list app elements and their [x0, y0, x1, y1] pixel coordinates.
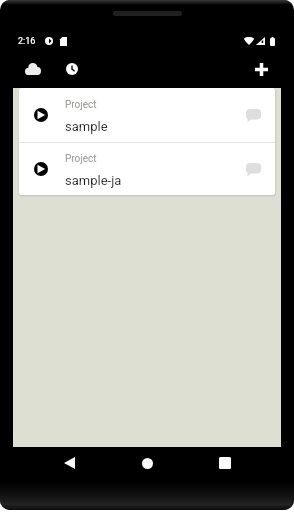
- button[interactable]: Back: [30, 447, 108, 479]
- staticText: Project: [65, 99, 97, 111]
- button[interactable]: Comments: [242, 104, 264, 126]
- button[interactable]: Project: [19, 143, 275, 195]
- staticText: sample-ja: [65, 173, 122, 188]
- staticText: sample: [65, 119, 108, 134]
- staticText: 2:16: [18, 36, 36, 47]
- staticText: Project: [65, 153, 97, 165]
- button[interactable]: Add: [249, 57, 273, 81]
- button[interactable]: History: [60, 57, 84, 81]
- button[interactable]: Cloud sync: [21, 57, 45, 81]
- button[interactable]: Recents: [186, 447, 264, 479]
- button[interactable]: Project: [19, 88, 275, 142]
- button[interactable]: Home: [108, 447, 186, 479]
- button[interactable]: Comments: [242, 158, 264, 180]
